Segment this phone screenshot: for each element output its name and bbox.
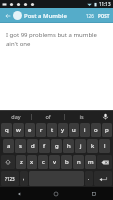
button[interactable]: x — [27, 155, 37, 169]
button[interactable]: m — [85, 155, 96, 169]
button[interactable]: g — [51, 139, 62, 153]
staticText: 126 — [86, 13, 94, 19]
button[interactable]: k — [87, 139, 98, 153]
staticText: x — [30, 158, 34, 166]
staticText: n — [77, 158, 81, 166]
button[interactable]: Home — [37, 187, 75, 200]
staticText: c — [42, 158, 45, 166]
staticText: q — [5, 126, 9, 134]
button[interactable]: q — [1, 123, 12, 137]
button[interactable]: v — [49, 155, 60, 169]
button[interactable]: r — [36, 123, 46, 137]
button[interactable]: z — [16, 155, 26, 169]
button[interactable]: f — [39, 139, 50, 153]
button[interactable]: y — [58, 123, 68, 137]
button[interactable]: Navigate up — [2, 10, 13, 21]
staticText: a — [7, 142, 11, 150]
staticText: r — [40, 126, 43, 134]
button[interactable]: a — [3, 139, 14, 153]
button[interactable]: i — [80, 123, 90, 137]
staticText: p — [105, 126, 109, 134]
button[interactable]: Period — [85, 171, 93, 186]
staticText: is — [79, 113, 84, 120]
staticText: l — [104, 142, 106, 150]
staticText: y — [61, 126, 65, 134]
button[interactable]: n — [73, 155, 84, 169]
button[interactable]: POST — [98, 8, 110, 23]
button[interactable]: j — [75, 139, 86, 153]
staticText: v — [53, 158, 57, 166]
button[interactable]: o — [91, 123, 101, 137]
staticText: m — [88, 158, 94, 166]
staticText: g — [55, 142, 59, 150]
button[interactable]: w — [13, 123, 24, 137]
button[interactable]: Shift — [1, 155, 15, 169]
staticText: POST — [98, 13, 110, 19]
button[interactable]: l — [99, 139, 110, 153]
button[interactable]: p — [102, 123, 112, 137]
staticText: t — [51, 126, 54, 134]
staticText: z — [20, 158, 23, 166]
button[interactable]: 126 — [86, 8, 94, 23]
staticText: f — [43, 142, 46, 150]
button[interactable]: Back — [0, 187, 37, 200]
staticText: w — [16, 126, 21, 134]
staticText: day — [11, 113, 21, 120]
staticText: of — [45, 113, 51, 120]
button[interactable]: Voice input — [97, 111, 113, 122]
staticText: . — [88, 175, 90, 182]
staticText: k — [91, 142, 95, 150]
staticText: s — [19, 142, 22, 150]
button[interactable]: h — [63, 139, 74, 153]
button[interactable]: e — [25, 123, 35, 137]
button[interactable]: b — [61, 155, 72, 169]
button[interactable]: Recent apps — [75, 187, 113, 200]
staticText: i — [84, 126, 86, 134]
staticText: Post a Mumble — [24, 12, 67, 20]
button[interactable]: t — [47, 123, 57, 137]
button[interactable]: c — [38, 155, 48, 169]
staticText: 11:13 — [99, 1, 111, 7]
button[interactable]: d — [27, 139, 38, 153]
staticText: , — [23, 175, 25, 182]
button[interactable]: Comma — [20, 171, 28, 186]
button[interactable]: day — [0, 111, 31, 122]
staticText: b — [65, 158, 69, 166]
staticText: u — [72, 126, 76, 134]
staticText: h — [67, 142, 71, 150]
button[interactable]: is — [65, 111, 97, 122]
button[interactable]: u — [69, 123, 79, 137]
staticText: I got 99 problems but a mumble ain't one — [6, 31, 108, 48]
button[interactable]: ?123 — [1, 171, 19, 186]
button[interactable]: of — [32, 111, 64, 122]
button[interactable]: Enter — [94, 171, 112, 186]
staticText: ?123 — [5, 176, 15, 182]
staticText: e — [28, 126, 32, 134]
staticText: j — [80, 142, 82, 150]
button[interactable]: s — [15, 139, 26, 153]
button[interactable]: Delete — [97, 155, 112, 169]
staticText: d — [31, 142, 35, 150]
staticText: o — [94, 126, 98, 134]
